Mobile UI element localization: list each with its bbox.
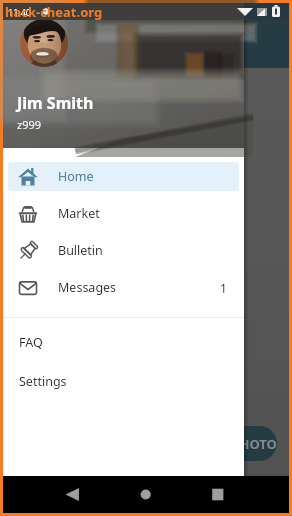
staticText: Market bbox=[58, 205, 100, 222]
button[interactable]: Market bbox=[8, 199, 239, 228]
staticText: Home bbox=[58, 168, 94, 185]
staticText: hack-cheat.org bbox=[5, 3, 103, 20]
button[interactable]: Home bbox=[8, 162, 239, 191]
staticText: Jim Smith bbox=[17, 92, 94, 114]
staticText: Settings bbox=[19, 373, 67, 390]
button[interactable]: System navigation bar bbox=[3, 476, 289, 513]
staticText: 1 bbox=[220, 280, 227, 296]
staticText: 11:40 bbox=[8, 6, 32, 18]
staticText: Bulletin bbox=[58, 242, 103, 259]
button[interactable]: Bulletin bbox=[8, 236, 239, 265]
button[interactable]: FAQ bbox=[3, 323, 244, 362]
button[interactable]: Messages bbox=[8, 273, 239, 302]
staticText: ADD PHOTO bbox=[200, 435, 277, 453]
staticText: FAQ bbox=[19, 334, 43, 351]
button[interactable]: ADD PHOTO bbox=[200, 426, 277, 461]
staticText: z999 bbox=[17, 117, 42, 132]
button[interactable]: Settings bbox=[3, 362, 244, 401]
staticText: Messages bbox=[58, 279, 117, 296]
